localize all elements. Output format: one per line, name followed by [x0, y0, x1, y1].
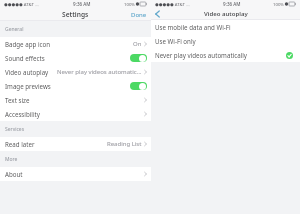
button[interactable]: Back: [155, 11, 160, 17]
button[interactable]: About: [0, 167, 151, 181]
button[interactable]: Sound effects: [0, 51, 151, 65]
staticText: ●●●●● AT&T ﹏: [155, 1, 191, 7]
staticText: Done: [131, 11, 147, 19]
staticText: Reading List: [107, 140, 142, 148]
button[interactable]: Image previews: [0, 79, 151, 93]
button[interactable]: Badge app icon: [0, 37, 151, 51]
staticText: Sound effects: [5, 54, 45, 62]
staticText: 9:36 AM: [223, 1, 241, 7]
staticText: Video autoplay: [5, 68, 49, 76]
button[interactable]: [130, 54, 147, 62]
button[interactable]: Text size: [0, 93, 151, 107]
staticText: Settings: [62, 10, 89, 19]
button[interactable]: Never play videos automatically: [151, 48, 300, 62]
staticText: Badge app icon: [5, 40, 51, 48]
staticText: 100%: [124, 1, 135, 7]
staticText: Video autoplay: [204, 10, 248, 18]
button[interactable]: Use mobile data and Wi-Fi: [151, 20, 300, 34]
staticText: 9:36 AM: [73, 1, 91, 7]
staticText: On: [133, 40, 142, 48]
staticText: Services: [5, 126, 25, 133]
staticText: Use mobile data and Wi-Fi: [155, 23, 231, 31]
staticText: More: [5, 156, 18, 163]
button[interactable]: [130, 82, 147, 90]
staticText: ●●●●● AT&T ﹏: [4, 1, 40, 7]
staticText: Text size: [5, 96, 30, 104]
staticText: About: [5, 170, 23, 178]
button[interactable]: Accessibility: [0, 107, 151, 121]
staticText: General: [5, 26, 24, 33]
staticText: Never play videos automatically: [155, 51, 248, 59]
button[interactable]: Video autoplay: [0, 65, 151, 79]
button[interactable]: Read later: [0, 137, 151, 151]
staticText: Use Wi-Fi only: [155, 37, 196, 45]
staticText: Accessibility: [5, 110, 40, 118]
button[interactable]: Use Wi-Fi only: [151, 34, 300, 48]
staticText: 100%: [273, 1, 284, 7]
staticText: Never play videos automatic…: [57, 68, 142, 76]
staticText: Image previews: [5, 82, 51, 90]
staticText: Read later: [5, 140, 35, 148]
button[interactable]: Done: [131, 11, 147, 19]
